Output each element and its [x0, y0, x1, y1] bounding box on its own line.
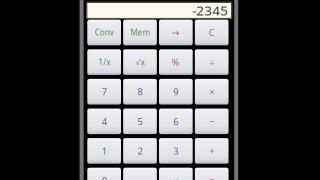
staticText: 3	[173, 145, 178, 157]
button[interactable]: √x	[123, 49, 157, 75]
button[interactable]: ±	[159, 168, 193, 180]
button[interactable]: ×	[195, 79, 229, 104]
button[interactable]: 5	[123, 108, 157, 134]
button[interactable]: 9	[159, 79, 193, 104]
button[interactable]: C	[195, 20, 229, 45]
button[interactable]: +	[195, 138, 229, 164]
staticText: +	[209, 145, 214, 157]
staticText: 6	[173, 115, 178, 127]
staticText: ×	[209, 85, 214, 98]
button[interactable]: %	[159, 49, 193, 75]
button[interactable]: 2	[123, 138, 157, 164]
button[interactable]: 3	[159, 138, 193, 164]
staticText: √x	[135, 57, 144, 67]
staticText: 4	[102, 115, 107, 127]
button[interactable]: 0	[87, 168, 121, 180]
staticText: 5	[137, 115, 142, 127]
button[interactable]: →	[159, 20, 193, 45]
button[interactable]: −	[195, 108, 229, 134]
staticText: 1/x	[98, 57, 110, 67]
button[interactable]: 7	[87, 79, 121, 104]
staticText: 8	[137, 85, 142, 98]
staticText: 1	[102, 145, 107, 157]
button[interactable]: 8	[123, 79, 157, 104]
button[interactable]: 6	[159, 108, 193, 134]
button[interactable]: =	[195, 168, 229, 180]
staticText: Conv	[95, 27, 114, 38]
staticText: =	[209, 174, 214, 180]
button[interactable]: Conv	[87, 20, 121, 45]
staticText: 0	[102, 174, 107, 180]
staticText: 9	[173, 85, 178, 98]
button[interactable]: 1/x	[87, 49, 121, 75]
button[interactable]: 1	[87, 138, 121, 164]
staticText: -2345	[192, 2, 228, 19]
button[interactable]: .	[123, 168, 157, 180]
button[interactable]: 4	[87, 108, 121, 134]
staticText: 7	[102, 85, 107, 98]
staticText: ±	[173, 174, 178, 180]
button[interactable]: ÷	[195, 49, 229, 75]
staticText: C	[209, 26, 215, 39]
staticText: →	[172, 27, 180, 38]
staticText: ÷	[209, 56, 214, 68]
staticText: Mem	[130, 27, 149, 38]
staticText: 2	[137, 145, 142, 157]
staticText: %	[172, 56, 180, 68]
button[interactable]: Mem	[123, 20, 157, 45]
staticText: −	[209, 115, 214, 127]
